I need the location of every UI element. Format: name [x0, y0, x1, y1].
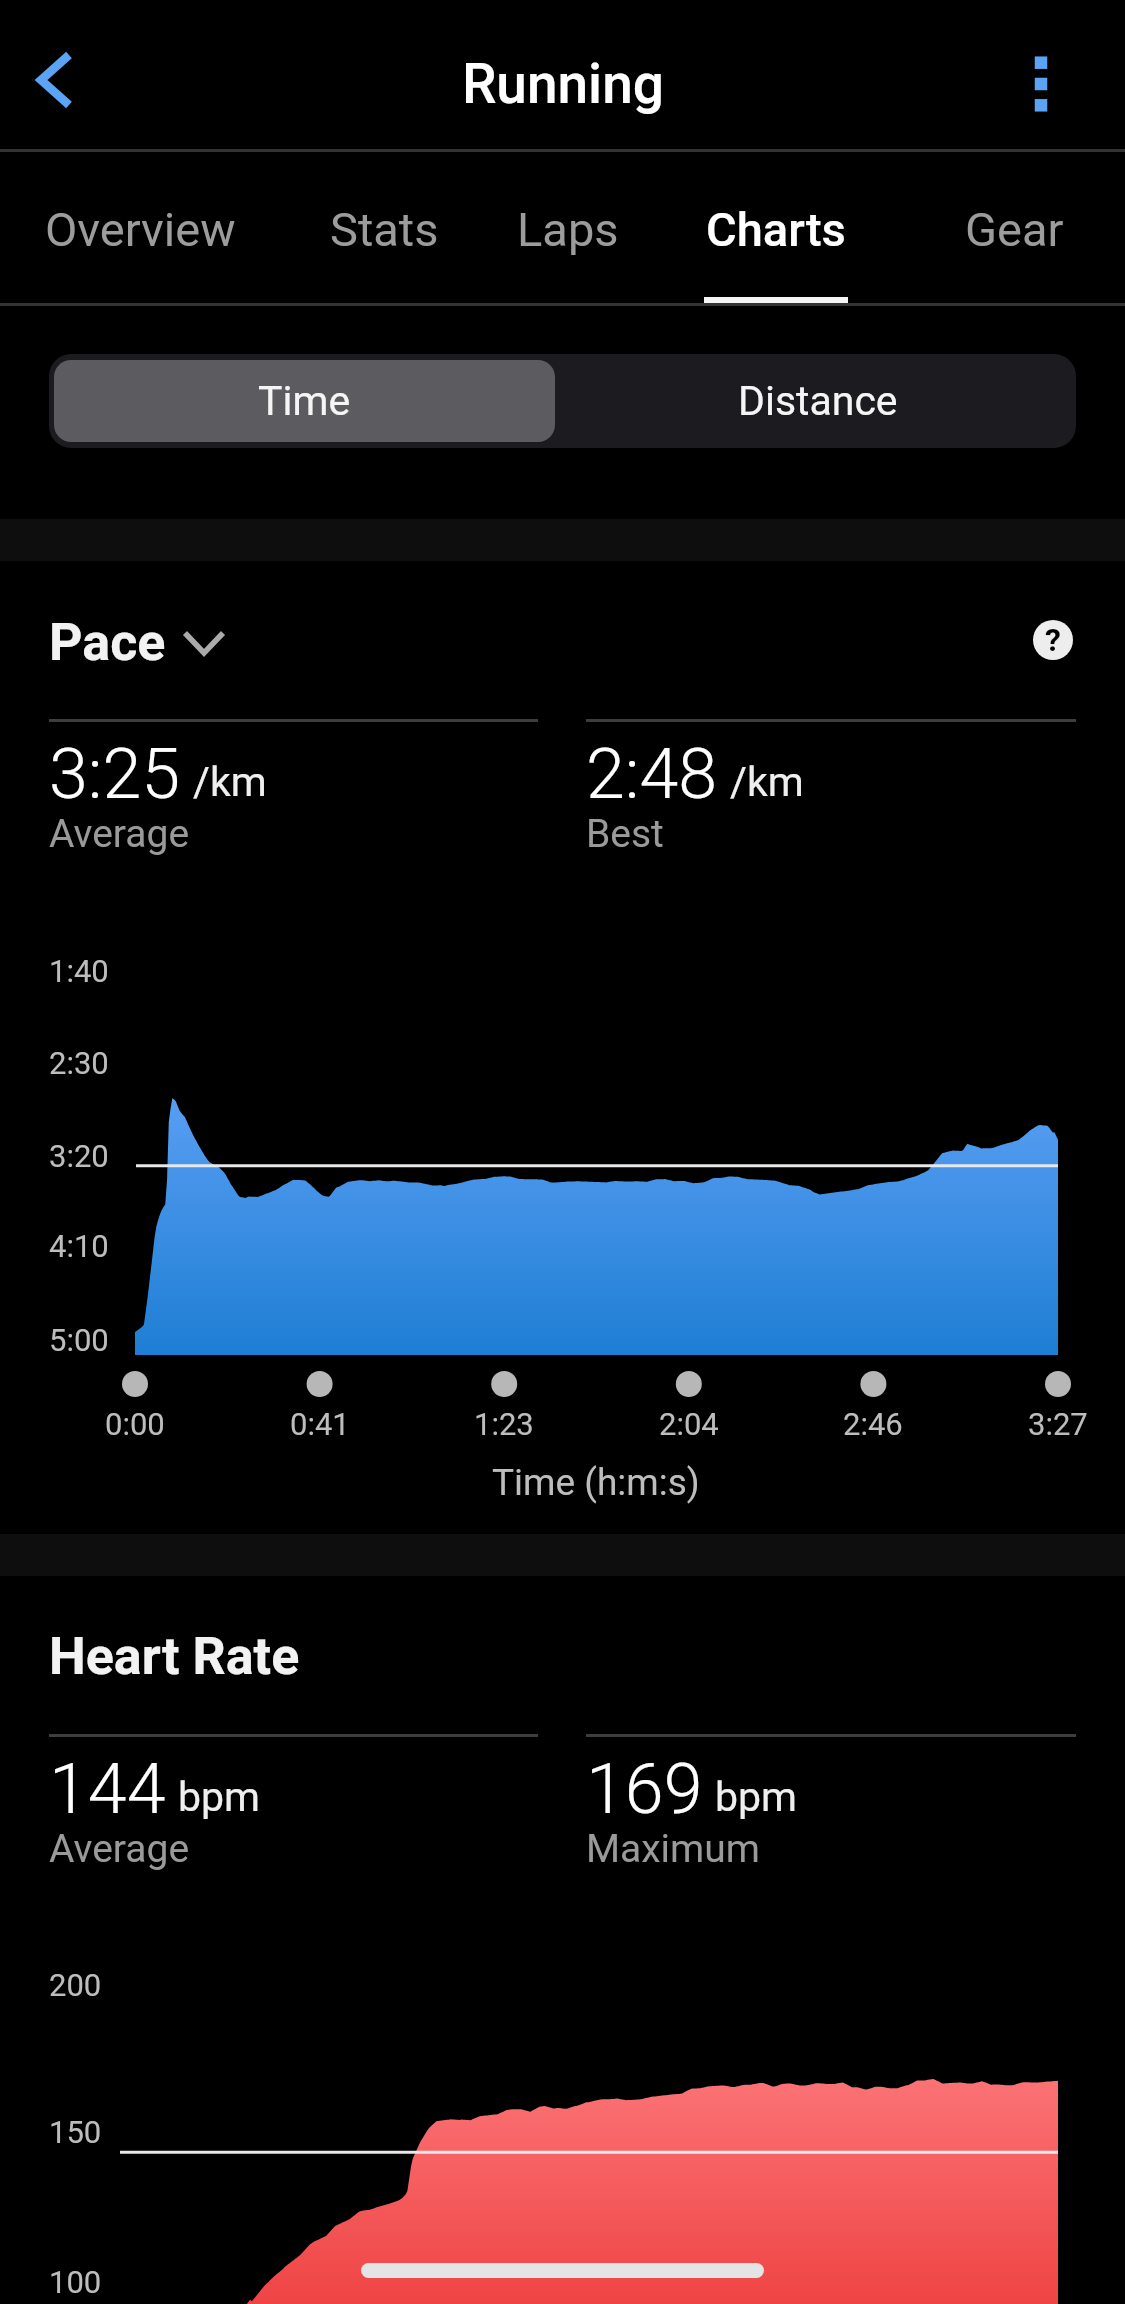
button[interactable]: Back: [5, 30, 105, 130]
staticText: 2:46: [843, 1406, 903, 1442]
button[interactable]: Overview: [20, 152, 260, 306]
staticText: /km: [193, 758, 267, 806]
staticText: Average: [49, 1826, 190, 1872]
staticText: 200: [49, 1967, 102, 2003]
button[interactable]: Stats: [264, 152, 504, 306]
staticText: 2:48: [586, 733, 718, 815]
staticText: Pace: [49, 612, 166, 673]
staticText: bpm: [178, 1773, 260, 1821]
button[interactable]: Gear: [894, 152, 1125, 306]
staticText: Overview: [45, 202, 236, 257]
button[interactable]: Pace: [49, 612, 228, 673]
staticText: Charts: [706, 202, 846, 257]
staticText: Time: [258, 377, 351, 425]
button[interactable]: Laps: [448, 152, 688, 306]
staticText: Time (h:m:s): [492, 1461, 700, 1504]
staticText: 2:04: [659, 1406, 719, 1442]
staticText: 1:40: [49, 953, 109, 989]
staticText: Gear: [965, 202, 1064, 257]
staticText: 0:41: [290, 1406, 350, 1442]
staticText: 100: [49, 2264, 102, 2300]
button[interactable]: Help: [1033, 620, 1073, 660]
staticText: Average: [49, 811, 190, 857]
button[interactable]: Distance: [560, 354, 1076, 448]
staticText: 169: [586, 1748, 703, 1830]
staticText: 3:25: [49, 733, 181, 815]
staticText: 2:30: [49, 1045, 109, 1081]
button[interactable]: Time: [54, 360, 555, 442]
staticText: bpm: [715, 1773, 797, 1821]
staticText: 1:23: [474, 1406, 534, 1442]
staticText: Heart Rate: [49, 1626, 300, 1687]
staticText: ?: [1045, 621, 1061, 659]
staticText: Maximum: [586, 1826, 760, 1872]
staticText: Stats: [330, 202, 439, 257]
staticText: Running: [462, 52, 664, 116]
staticText: 3:20: [49, 1138, 109, 1174]
staticText: Best: [586, 811, 664, 857]
staticText: 0:00: [105, 1406, 165, 1442]
staticText: 144: [49, 1748, 166, 1830]
button[interactable]: More options: [991, 34, 1091, 134]
staticText: 5:00: [49, 1322, 109, 1358]
staticText: 4:10: [49, 1228, 109, 1264]
staticText: 150: [49, 2114, 102, 2150]
staticText: Laps: [517, 202, 619, 257]
button[interactable]: Charts: [656, 152, 896, 306]
staticText: /km: [730, 758, 804, 806]
staticText: Distance: [738, 377, 898, 425]
staticText: 3:27: [1028, 1406, 1088, 1442]
